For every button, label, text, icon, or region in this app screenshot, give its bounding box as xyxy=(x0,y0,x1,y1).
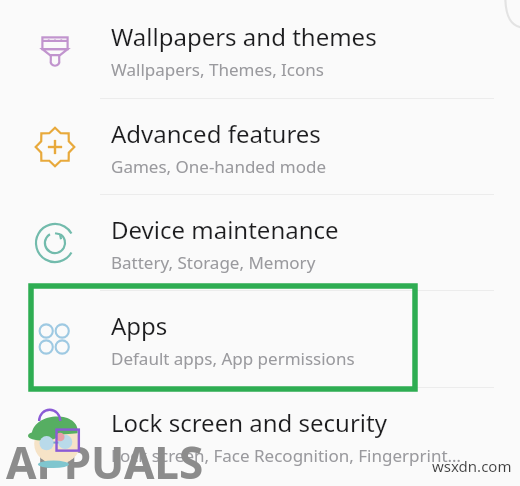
other: Advanced features xyxy=(34,126,76,168)
staticText: Advanced features xyxy=(111,117,321,150)
button[interactable]: Apps xyxy=(0,291,520,387)
staticText: APPUALS xyxy=(6,432,204,486)
staticText: Default apps, App permissions xyxy=(111,347,355,370)
button[interactable]: Device maintenance xyxy=(0,195,520,291)
button[interactable]: Advanced features xyxy=(0,99,520,195)
staticText: Wallpapers and themes xyxy=(111,20,377,53)
button[interactable]: Lock screen and security xyxy=(0,388,520,484)
staticText: Games, One-handed mode xyxy=(111,155,327,178)
other: Device maintenance xyxy=(34,222,76,264)
staticText: Lock screen, Face Recognition, Fingerpri… xyxy=(111,444,461,467)
other: Lock screen and security xyxy=(35,416,75,456)
staticText: Apps xyxy=(111,309,168,342)
other: Apps highlighted xyxy=(31,286,415,389)
other: Wallpapers xyxy=(34,29,76,71)
staticText: Device maintenance xyxy=(111,213,339,246)
staticText: wsxdn.com xyxy=(432,456,512,476)
other: Apps xyxy=(35,319,75,359)
staticText: Battery, Storage, Memory xyxy=(111,251,316,274)
staticText: Lock screen and security xyxy=(111,406,387,439)
staticText: Wallpapers, Themes, Icons xyxy=(111,58,324,81)
button[interactable]: Wallpapers xyxy=(0,2,520,98)
